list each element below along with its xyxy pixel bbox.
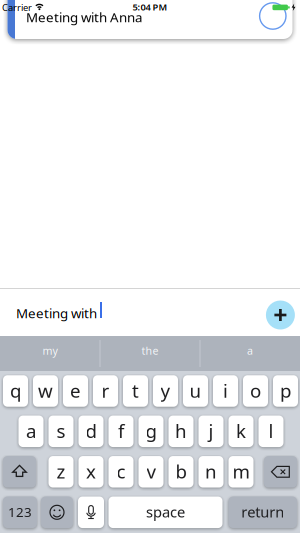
button[interactable]: h	[168, 416, 193, 447]
staticText: 123	[8, 503, 32, 521]
button[interactable]: c	[108, 456, 133, 488]
button[interactable]: w	[33, 375, 58, 407]
staticText: u	[189, 378, 201, 403]
button[interactable]: Meeting with Anna	[7, 0, 292, 39]
staticText: Meeting with Anna	[26, 8, 142, 26]
button[interactable]: y	[153, 375, 178, 407]
button[interactable]	[3, 456, 36, 488]
staticText: a	[247, 343, 253, 358]
staticText: w	[38, 378, 53, 403]
staticText: the	[141, 343, 158, 358]
button[interactable]: p	[273, 375, 298, 407]
staticText: g	[145, 418, 156, 443]
staticText: m	[232, 459, 249, 484]
button[interactable]: e	[63, 375, 88, 407]
button[interactable]: d	[78, 416, 103, 447]
staticText: c	[116, 459, 125, 484]
button[interactable]: j	[198, 416, 223, 447]
button[interactable]: f	[108, 416, 133, 447]
staticText: p	[280, 378, 291, 403]
staticText: b	[175, 459, 186, 484]
button[interactable]	[41, 496, 73, 528]
button[interactable]: s	[48, 416, 73, 447]
button[interactable]: k	[228, 416, 253, 447]
button[interactable]: t	[123, 375, 148, 407]
staticText: a	[26, 418, 36, 443]
button[interactable]: i	[213, 375, 238, 407]
staticText: e	[70, 378, 81, 403]
button[interactable]: m	[228, 456, 253, 488]
button[interactable]: v	[138, 456, 163, 488]
staticText: x	[86, 459, 96, 484]
button[interactable]: my	[1, 333, 99, 368]
button[interactable]: x	[78, 456, 103, 488]
button[interactable]: return	[228, 496, 297, 528]
staticText: o	[250, 378, 261, 403]
button[interactable]: g	[138, 416, 163, 447]
staticText: v	[146, 459, 155, 484]
button[interactable]: a	[201, 333, 299, 368]
button[interactable]: z	[48, 456, 73, 488]
button[interactable]	[78, 496, 104, 528]
button[interactable]: a	[18, 416, 43, 447]
staticText: d	[85, 418, 96, 443]
button[interactable]: o	[243, 375, 268, 407]
staticText: s	[56, 418, 65, 443]
staticText: n	[205, 459, 217, 484]
staticText: y	[160, 378, 170, 403]
staticText: f	[118, 418, 124, 443]
button[interactable]: u	[183, 375, 208, 407]
button[interactable]: q	[3, 375, 28, 407]
button[interactable]: n	[198, 456, 223, 488]
staticText: r	[101, 378, 109, 403]
staticText: return	[241, 502, 284, 522]
button[interactable]	[264, 456, 297, 488]
staticText: 5:04 PM	[132, 1, 167, 13]
button[interactable]: the	[101, 333, 199, 368]
staticText: h	[175, 418, 187, 443]
staticText: Carrier	[2, 1, 32, 14]
staticText: i	[223, 378, 228, 403]
staticText: z	[56, 459, 65, 484]
staticText: j	[208, 418, 213, 443]
staticText: k	[236, 418, 246, 443]
button[interactable]: b	[168, 456, 193, 488]
button[interactable]: space	[108, 496, 222, 528]
staticText: l	[268, 418, 273, 443]
staticText: my	[42, 343, 57, 358]
button[interactable]	[266, 300, 295, 329]
button[interactable]: l	[258, 416, 283, 447]
staticText: q	[10, 378, 21, 403]
button[interactable]: 123	[3, 496, 37, 528]
staticText: Meeting with	[16, 304, 97, 322]
staticText: t	[132, 378, 139, 403]
staticText: space	[146, 502, 185, 522]
button[interactable]: r	[93, 375, 118, 407]
